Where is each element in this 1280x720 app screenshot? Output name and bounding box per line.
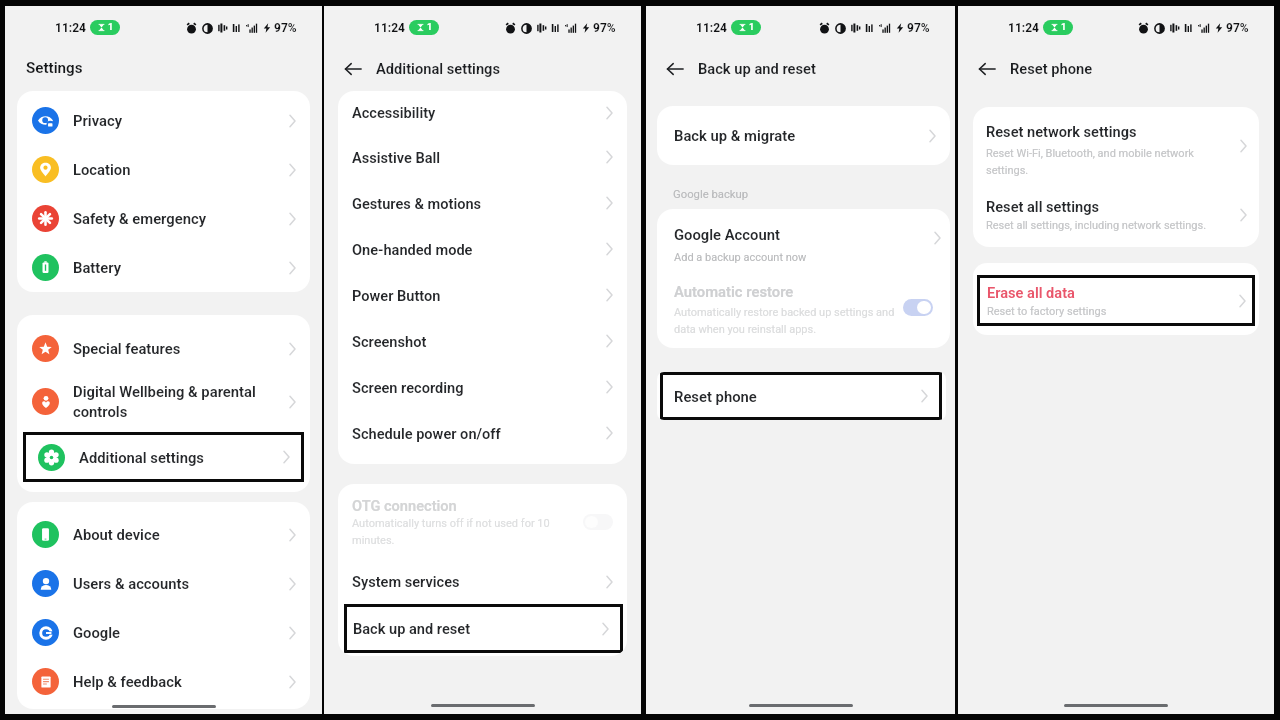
- staticText: 97%: [907, 21, 930, 35]
- staticText: Back up & migrate: [674, 127, 929, 144]
- button[interactable]: Screen recording: [338, 364, 627, 410]
- button[interactable]: Automatic restore: [657, 266, 950, 348]
- staticText: Settings: [26, 59, 83, 77]
- staticText: 11:24: [696, 21, 727, 35]
- staticText: Google Account: [674, 226, 780, 243]
- staticText: 11:24: [374, 21, 405, 35]
- button[interactable]: Battery: [17, 243, 310, 292]
- button[interactable]: Power Button: [338, 272, 627, 318]
- button[interactable]: Gestures & motions: [338, 180, 627, 226]
- staticText: Additional settings: [79, 449, 283, 466]
- button[interactable]: Assistive Ball: [338, 134, 627, 180]
- staticText: Automatically turns off if not used for …: [352, 517, 550, 546]
- button[interactable]: Accessibility: [338, 91, 627, 134]
- staticText: Privacy: [73, 112, 289, 129]
- button[interactable]: Back: [664, 58, 686, 80]
- staticText: Accessibility: [352, 104, 606, 121]
- staticText: Back up and reset: [698, 60, 816, 77]
- button[interactable]: Back: [976, 58, 998, 80]
- staticText: Automatic restore: [674, 283, 794, 300]
- staticText: Add a backup account now: [674, 251, 807, 264]
- staticText: Power Button: [352, 287, 606, 304]
- button[interactable]: Erase all data: [977, 275, 1255, 326]
- staticText: Users & accounts: [73, 575, 289, 592]
- button[interactable]: Digital Wellbeing & parental controls: [17, 373, 310, 430]
- staticText: About device: [73, 526, 289, 543]
- button[interactable]: Back: [342, 58, 364, 80]
- staticText: Back up and reset: [353, 620, 602, 637]
- button[interactable]: Back up and reset: [344, 604, 623, 653]
- button[interactable]: Google: [17, 608, 310, 657]
- staticText: 1: [1061, 22, 1067, 33]
- staticText: Erase all data: [987, 284, 1075, 301]
- button[interactable]: Schedule power on/off: [338, 410, 627, 456]
- button[interactable]: System services: [338, 559, 627, 604]
- staticText: 97%: [1226, 21, 1249, 35]
- staticText: Location: [73, 161, 289, 178]
- staticText: Gestures & motions: [352, 195, 606, 212]
- staticText: Digital Wellbeing & parental controls: [73, 383, 289, 421]
- staticText: Safety & emergency: [73, 210, 289, 227]
- button[interactable]: Privacy: [17, 96, 310, 145]
- staticText: OTG connection: [352, 497, 457, 514]
- staticText: Additional settings: [376, 60, 501, 77]
- button[interactable]: OTG connection: [338, 484, 627, 559]
- button[interactable]: Additional settings: [23, 432, 304, 482]
- button[interactable]: Safety & emergency: [17, 194, 310, 243]
- staticText: Reset to factory settings: [987, 305, 1107, 318]
- button[interactable]: Google Account: [657, 209, 950, 266]
- staticText: Reset Wi-Fi, Bluetooth, and mobile netwo…: [986, 147, 1194, 176]
- staticText: Special features: [73, 340, 289, 357]
- button[interactable]: Reset all settings: [973, 185, 1259, 245]
- staticText: Screenshot: [352, 333, 606, 350]
- staticText: Screen recording: [352, 379, 606, 396]
- staticText: 11:24: [55, 21, 86, 35]
- staticText: Assistive Ball: [352, 149, 606, 166]
- button[interactable]: Screenshot: [338, 318, 627, 364]
- staticText: Google backup: [673, 188, 749, 201]
- staticText: Automatically restore backed up settings…: [674, 306, 895, 335]
- button[interactable]: One-handed mode: [338, 226, 627, 272]
- staticText: 97%: [274, 21, 297, 35]
- staticText: Google: [73, 624, 289, 641]
- staticText: Reset phone: [1010, 60, 1093, 77]
- button[interactable]: Reset network settings: [973, 107, 1259, 185]
- staticText: 1: [427, 22, 433, 33]
- button[interactable]: Users & accounts: [17, 559, 310, 608]
- staticText: 11:24: [1008, 21, 1039, 35]
- staticText: Reset all settings, including network se…: [986, 219, 1207, 232]
- staticText: One-handed mode: [352, 241, 606, 258]
- button[interactable]: Automatic restore toggle: [903, 299, 933, 316]
- staticText: Reset phone: [674, 388, 921, 405]
- button[interactable]: Back up & migrate: [657, 106, 950, 165]
- staticText: 1: [749, 22, 755, 33]
- button[interactable]: Location: [17, 145, 310, 194]
- staticText: 1: [108, 22, 114, 33]
- button[interactable]: About device: [17, 510, 310, 559]
- staticText: Reset all settings: [986, 198, 1099, 215]
- staticText: Schedule power on/off: [352, 425, 606, 442]
- staticText: 97%: [593, 21, 616, 35]
- staticText: Battery: [73, 259, 289, 276]
- button[interactable]: Special features: [17, 324, 310, 373]
- staticText: Help & feedback: [73, 673, 289, 690]
- button[interactable]: Help & feedback: [17, 657, 310, 706]
- button[interactable]: OTG connection toggle: [583, 514, 613, 530]
- staticText: System services: [352, 573, 606, 590]
- button[interactable]: Reset phone: [660, 372, 942, 420]
- staticText: Reset network settings: [986, 123, 1137, 140]
